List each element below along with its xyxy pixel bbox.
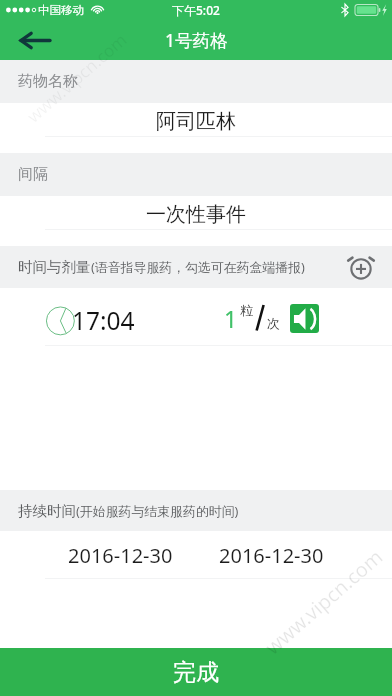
staticText: www.vipcn.com bbox=[22, 27, 132, 127]
button[interactable]: 1 bbox=[224, 299, 280, 335]
button[interactable]: Add alarm bbox=[344, 249, 378, 283]
staticText: 药物名称 bbox=[18, 72, 78, 91]
button[interactable]: 17:04 bbox=[46, 303, 139, 336]
button[interactable]: 2016-12-30 bbox=[196, 531, 347, 579]
staticText: (语音指导服药，勾选可在药盒端播报) bbox=[91, 258, 305, 276]
staticText: 2016-12-30 bbox=[68, 542, 173, 569]
staticText: 间隔 bbox=[18, 165, 48, 184]
button[interactable]: 一次性事件 bbox=[0, 196, 392, 230]
staticText: (开始服药与结束服药的时间) bbox=[76, 502, 239, 520]
staticText: 17:04 bbox=[72, 304, 135, 337]
staticText: 完成 bbox=[173, 658, 219, 687]
staticText: 次 bbox=[267, 315, 280, 331]
button[interactable]: 2016-12-30 bbox=[45, 531, 196, 579]
button[interactable]: 阿司匹林 bbox=[0, 103, 392, 137]
staticText: 中国移动 bbox=[38, 3, 84, 17]
staticText: 粒 bbox=[240, 302, 253, 318]
staticText: 2016-12-30 bbox=[219, 542, 324, 569]
staticText: 持续时间 bbox=[18, 502, 76, 520]
button[interactable]: 完成 bbox=[0, 648, 392, 696]
staticText: 1 bbox=[224, 303, 238, 334]
button[interactable]: Back bbox=[11, 20, 59, 60]
staticText: 下午5:02 bbox=[172, 2, 220, 18]
staticText: 一次性事件 bbox=[146, 202, 246, 227]
staticText: 时间与剂量 bbox=[18, 258, 91, 276]
staticText: 阿司匹林 bbox=[156, 109, 236, 134]
button[interactable]: Voice reminder bbox=[290, 304, 319, 333]
staticText: 1号药格 bbox=[165, 28, 228, 52]
staticText: www.vipcn.com bbox=[259, 543, 389, 660]
